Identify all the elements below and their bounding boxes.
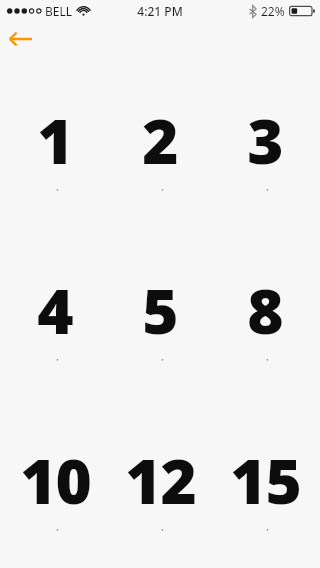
button[interactable]: 15 <box>215 436 315 532</box>
staticText: 4:21 PM <box>137 3 183 19</box>
button[interactable]: 8 <box>215 266 315 362</box>
staticText: 12 <box>125 438 196 522</box>
button[interactable]: 10 <box>5 436 105 532</box>
staticText: min <box>251 524 279 532</box>
staticText: 4 <box>37 268 73 352</box>
button[interactable]: 2 <box>110 96 210 192</box>
button[interactable]: 1 <box>5 96 105 192</box>
button[interactable]: 3 <box>215 96 315 192</box>
staticText: 1 <box>37 98 73 182</box>
staticText: min <box>146 524 174 532</box>
button[interactable]: 12 <box>110 436 210 532</box>
button[interactable]: Back <box>0 24 44 54</box>
staticText: min <box>146 354 174 362</box>
staticText: 5 <box>142 268 178 352</box>
button[interactable]: 4 <box>5 266 105 362</box>
staticText: 22% <box>261 3 285 19</box>
staticText: min <box>251 184 279 192</box>
staticText: 15 <box>230 438 301 522</box>
staticText: min <box>251 354 279 362</box>
staticText: 10 <box>20 438 91 522</box>
staticText: 3 <box>247 98 283 182</box>
staticText: min <box>146 184 174 192</box>
staticText: BELL <box>45 3 73 19</box>
staticText: 2 <box>142 98 178 182</box>
button[interactable]: 5 <box>110 266 210 362</box>
staticText: min <box>41 354 69 362</box>
staticText: 8 <box>247 268 283 352</box>
staticText: min <box>41 184 69 192</box>
staticText: min <box>41 524 69 532</box>
